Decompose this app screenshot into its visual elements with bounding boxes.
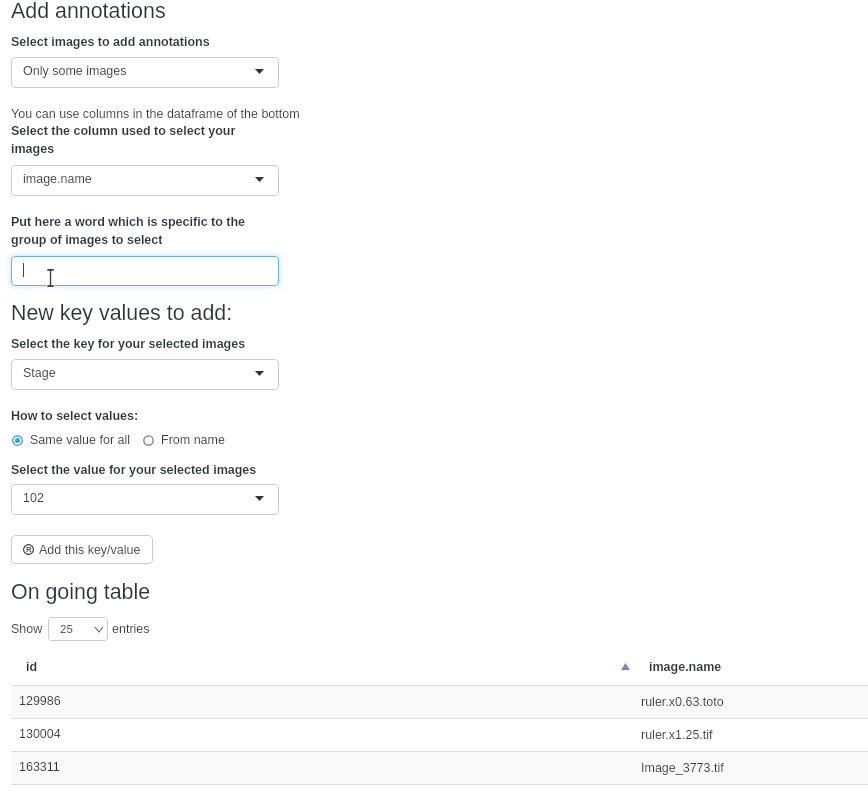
- staticText: You can use columns in the dataframe of …: [11, 107, 300, 121]
- staticText: Show: [11, 622, 43, 636]
- staticText: From name: [161, 433, 225, 447]
- staticText: 163311: [19, 760, 60, 774]
- staticText: Add annotations: [11, 0, 166, 23]
- button[interactable]: 129986: [11, 686, 868, 718]
- staticText: On going table: [11, 580, 151, 604]
- staticText: id: [26, 660, 38, 674]
- button[interactable]: Select the column: [11, 165, 279, 196]
- button[interactable]: Select the value: [11, 484, 279, 515]
- button[interactable]: From name: [143, 433, 225, 447]
- button[interactable]: Same value for all: [12, 433, 131, 447]
- button[interactable]: Select images to add annotations: [11, 57, 279, 88]
- button[interactable]: Word specific to the group of images: [11, 256, 279, 286]
- button[interactable]: Entries per page: [48, 617, 108, 641]
- staticText: Put here a word which is specific to the…: [11, 215, 246, 247]
- staticText: 129986: [19, 694, 61, 708]
- staticText: Image_3773.tif: [641, 761, 724, 775]
- staticText: Stage: [23, 366, 56, 380]
- staticText: 25: [60, 623, 73, 636]
- staticText: image.name: [649, 660, 722, 674]
- staticText: ruler.x0.63.toto: [641, 695, 724, 709]
- staticText: image.name: [23, 172, 92, 186]
- staticText: R: [26, 545, 32, 554]
- staticText: Same value for all: [30, 433, 131, 447]
- staticText: Only some images: [23, 64, 127, 78]
- staticText: New key values to add:: [11, 301, 233, 325]
- staticText: Add this key/value: [39, 543, 141, 557]
- staticText: Select the key for your selected images: [11, 337, 246, 351]
- staticText: entries: [112, 622, 150, 636]
- button[interactable]: R: [11, 535, 153, 564]
- staticText: How to select values:: [11, 409, 139, 423]
- staticText: Select the column used to select your im…: [11, 124, 236, 156]
- button[interactable]: Select the key: [11, 359, 279, 390]
- staticText: Select the value for your selected image…: [11, 463, 257, 477]
- staticText: Select images to add annotations: [11, 35, 210, 49]
- button[interactable]: 163311: [11, 752, 868, 784]
- button[interactable]: 130004: [11, 719, 868, 751]
- staticText: ruler.x1.25.tif: [641, 728, 713, 742]
- staticText: 102: [23, 491, 44, 505]
- staticText: 130004: [19, 727, 61, 741]
